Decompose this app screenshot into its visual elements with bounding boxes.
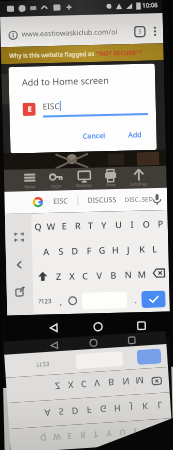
staticText: L [157, 400, 163, 412]
button[interactable]: www.eastiowaskiclub.com/oi [0, 13, 163, 47]
button[interactable]: A [39, 238, 53, 263]
staticText: G [100, 403, 107, 416]
button[interactable]: V [92, 262, 107, 287]
button[interactable]: U [111, 211, 126, 236]
staticText: Login [51, 183, 62, 189]
button[interactable]: , [55, 288, 66, 314]
button[interactable]: 3 [134, 25, 146, 38]
button[interactable]: L [148, 235, 162, 261]
staticText: F [86, 244, 92, 256]
staticText: DISC..SED [125, 195, 153, 204]
staticText: I [133, 427, 137, 438]
button[interactable] [82, 291, 127, 310]
staticText: A [43, 245, 49, 257]
button[interactable]: O [139, 210, 154, 236]
staticText: S [58, 245, 63, 257]
staticText: K [142, 401, 149, 413]
button[interactable]: P [153, 210, 168, 235]
button[interactable]: T [84, 212, 97, 237]
button[interactable]: E [57, 212, 71, 238]
button[interactable]: Add [122, 128, 149, 143]
button[interactable]: Menu [20, 171, 40, 189]
staticText: E [67, 431, 73, 442]
button[interactable]: K [135, 236, 148, 261]
staticText: V [96, 269, 103, 281]
staticText: E [27, 105, 32, 115]
staticText: Y [106, 428, 112, 440]
button[interactable] [148, 260, 169, 286]
staticText: G [99, 244, 106, 256]
staticText: H [112, 243, 119, 255]
button[interactable]: Why is this website flagged as [1, 43, 164, 64]
staticText: R [75, 219, 81, 231]
staticText: W [46, 220, 56, 232]
button[interactable]: Scroll up [127, 168, 151, 187]
staticText: Why is this website flagged as [9, 50, 96, 60]
button[interactable]: Z [52, 263, 65, 288]
button[interactable]: X [65, 262, 78, 288]
button[interactable]: Desktop [72, 169, 95, 188]
staticText: F [86, 404, 92, 417]
staticText: T [88, 219, 94, 231]
button[interactable]: N [120, 261, 135, 286]
button[interactable]: F [81, 237, 96, 262]
staticText: S [58, 406, 64, 419]
staticText: Z [56, 270, 62, 282]
staticText: Desktop [76, 183, 92, 188]
button[interactable]: Q [31, 213, 45, 238]
staticText: J [130, 402, 134, 414]
button[interactable] [14, 233, 24, 242]
button[interactable]: D [67, 237, 82, 263]
button[interactable]: EISC [53, 196, 68, 207]
staticText: D [71, 244, 79, 256]
staticText: O [142, 217, 151, 230]
button[interactable]: Cancel [77, 129, 112, 144]
button[interactable] [82, 315, 113, 338]
button[interactable]: ?123 [33, 288, 56, 315]
button[interactable]: DISCUSS [87, 195, 117, 206]
button[interactable] [32, 263, 52, 289]
button[interactable]: J [122, 236, 135, 261]
button[interactable]: B [106, 261, 121, 287]
button[interactable]: G [95, 236, 109, 262]
button[interactable]: Y [97, 211, 111, 237]
staticText: M [135, 375, 145, 387]
button[interactable] [65, 287, 80, 314]
staticText: Y [101, 218, 107, 231]
button[interactable]: R [70, 212, 84, 237]
button[interactable]: Login [46, 170, 66, 189]
button[interactable]: C [78, 262, 92, 288]
button[interactable]: M [134, 261, 149, 286]
button[interactable]: S [53, 237, 68, 263]
staticText: O [145, 426, 152, 437]
staticText: X [68, 379, 74, 392]
staticText: Add to Home screen [22, 74, 110, 88]
button[interactable] [38, 316, 68, 339]
staticText: 10:06 [142, 1, 159, 9]
staticText: Cancel [83, 131, 106, 142]
button[interactable]: I [125, 211, 140, 236]
button[interactable] [16, 287, 25, 296]
button[interactable]: DISC..SED [125, 195, 153, 204]
staticText: W [53, 432, 62, 443]
button[interactable]: H [108, 236, 122, 262]
staticText: L [152, 242, 157, 255]
button[interactable] [15, 261, 23, 269]
staticText: , [59, 295, 63, 307]
button[interactable]: . [129, 286, 142, 312]
button[interactable]: W [44, 213, 58, 238]
staticText: Menu [24, 184, 36, 189]
button[interactable] [126, 314, 156, 337]
staticText: U [115, 218, 122, 230]
staticText: C [82, 269, 88, 281]
staticText: J [127, 243, 130, 255]
staticText: Add [128, 130, 142, 140]
staticText: EISC [42, 100, 60, 111]
button[interactable]: Print [101, 169, 120, 187]
button[interactable] [141, 290, 166, 308]
button[interactable] [153, 25, 157, 37]
staticText: A [44, 407, 51, 420]
staticText: B [108, 377, 115, 389]
staticText: T [93, 429, 99, 440]
